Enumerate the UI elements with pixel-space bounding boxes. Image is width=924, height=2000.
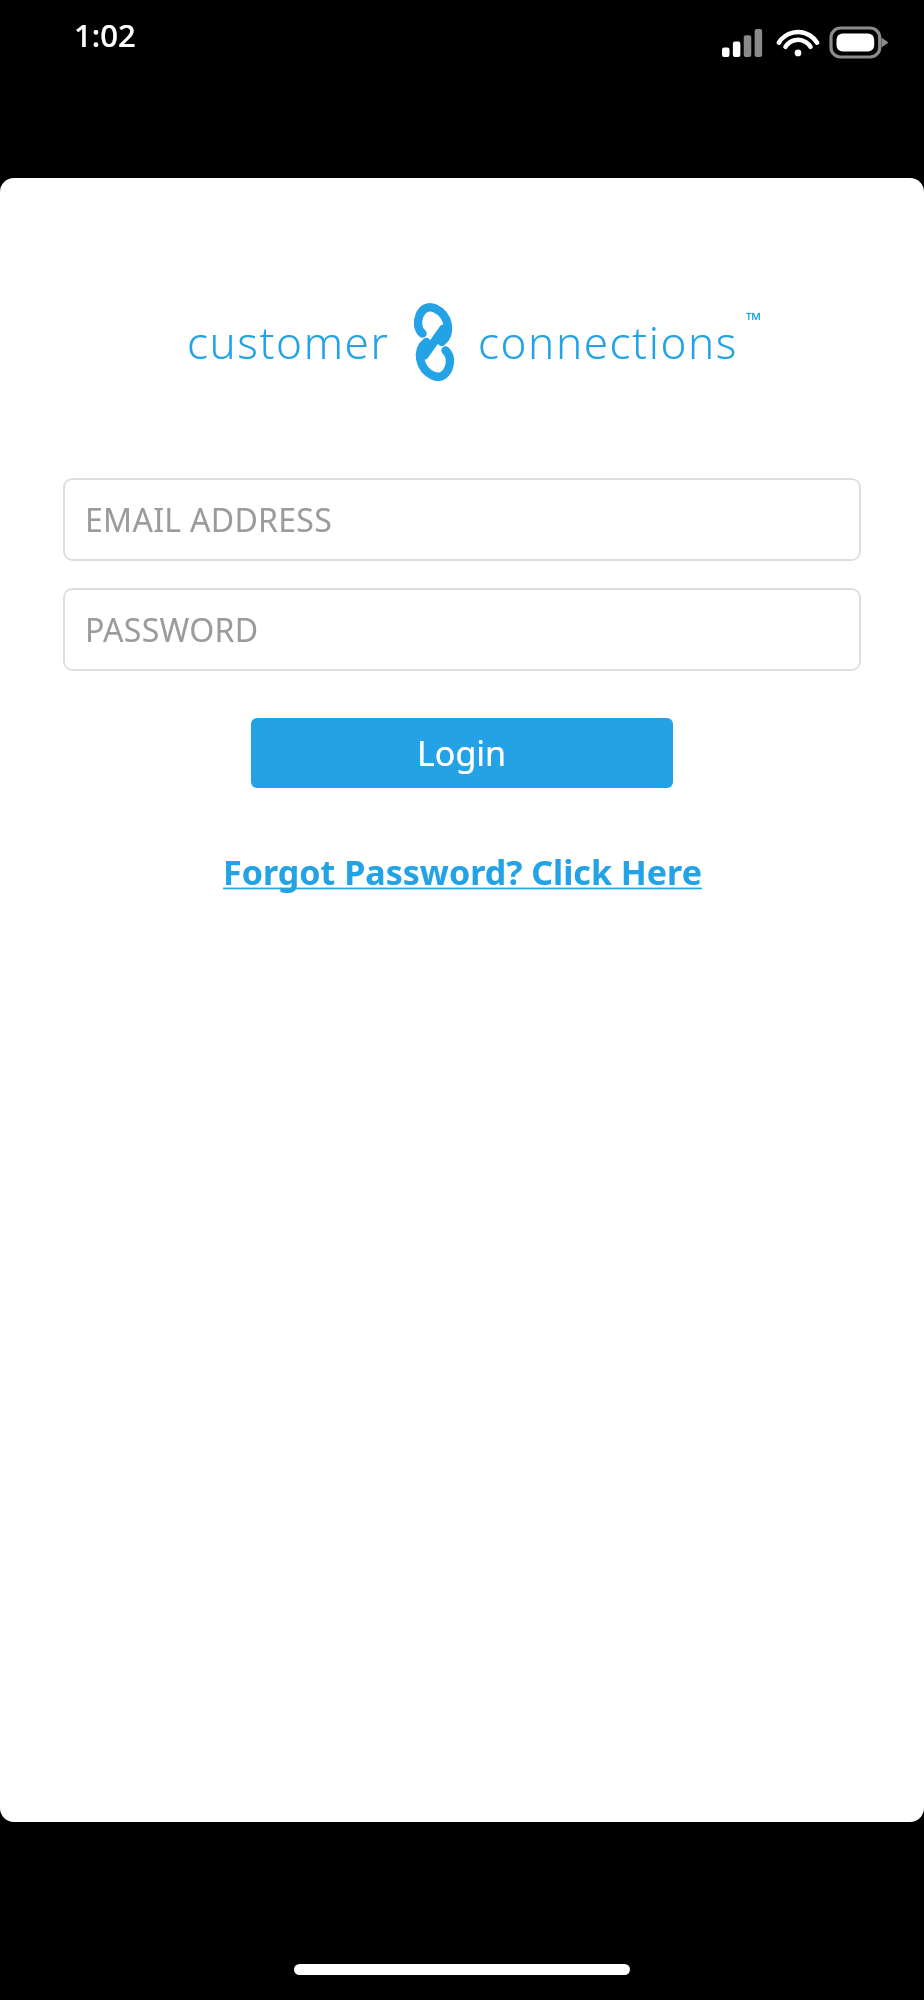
staticText: PASSWORD bbox=[85, 608, 259, 652]
staticText: customer bbox=[187, 312, 390, 372]
other: Customer Connections logo mark bbox=[410, 300, 458, 384]
staticText: Forgot Password? Click Here bbox=[223, 849, 702, 895]
staticText: 1:02 bbox=[74, 14, 136, 56]
button[interactable]: Forgot Password? Click Here bbox=[215, 845, 710, 899]
staticText: connections bbox=[478, 312, 738, 372]
staticText: Login bbox=[417, 730, 507, 776]
staticText: ™ bbox=[746, 306, 762, 333]
staticText: EMAIL ADDRESS bbox=[85, 498, 333, 542]
button[interactable]: Login bbox=[251, 718, 673, 788]
button[interactable]: EMAIL ADDRESS bbox=[63, 478, 861, 561]
button[interactable]: PASSWORD bbox=[63, 588, 861, 671]
